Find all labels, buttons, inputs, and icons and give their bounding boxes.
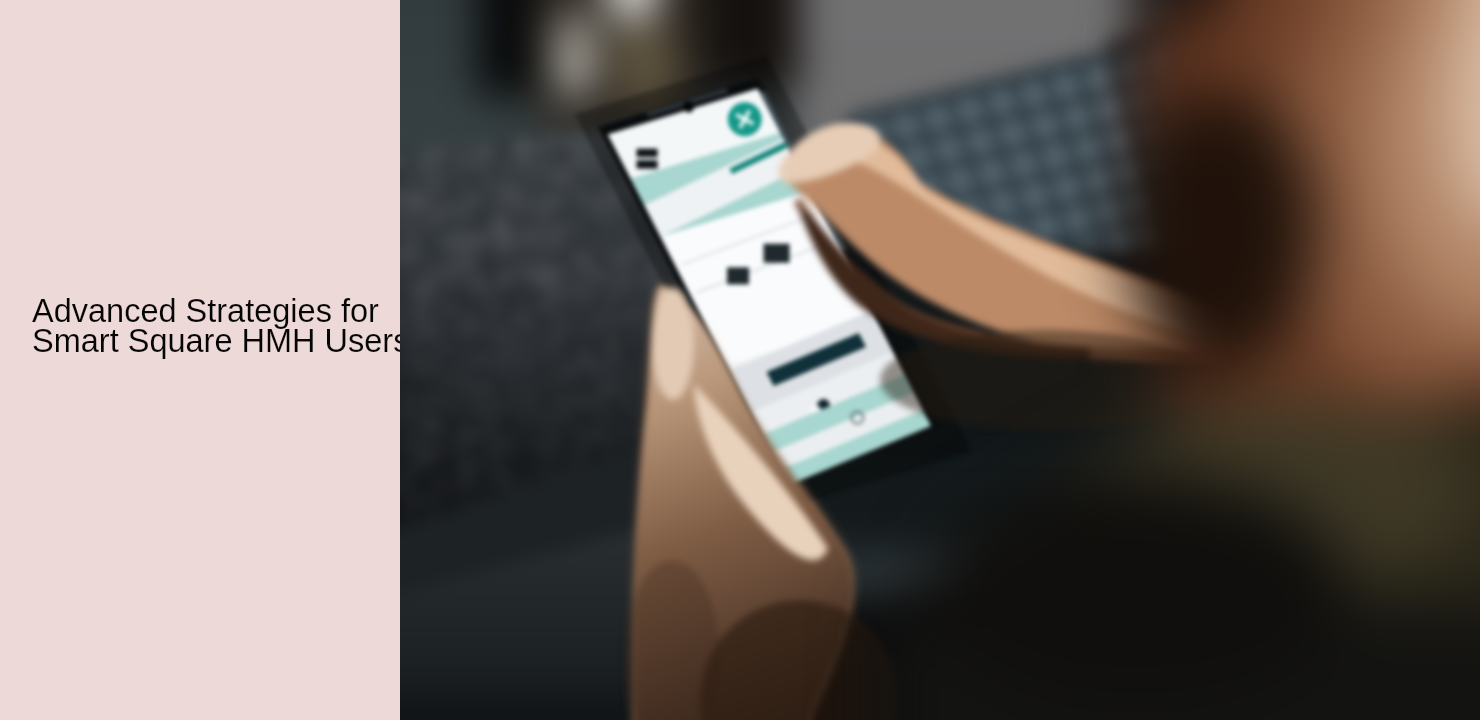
staticText: Advanced Strategies for Smart Square HMH…: [32, 293, 400, 359]
